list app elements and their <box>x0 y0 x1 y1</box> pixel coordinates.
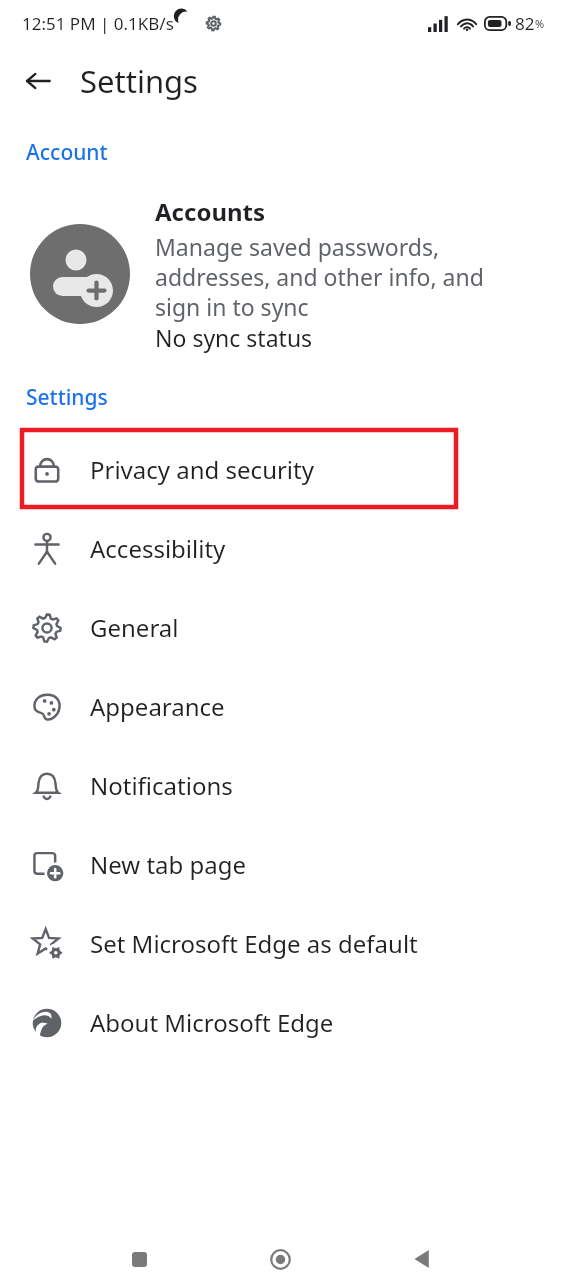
staticText: General <box>90 611 179 644</box>
button[interactable]: General <box>0 588 561 667</box>
staticText: Manage saved passwords, addresses, and o… <box>155 231 484 322</box>
button[interactable]: Recent apps <box>116 1236 162 1282</box>
staticText: % <box>535 16 545 31</box>
button[interactable]: Home <box>257 1236 303 1282</box>
button[interactable]: Appearance <box>0 667 561 746</box>
button[interactable]: Accounts <box>0 195 561 353</box>
staticText: Settings <box>80 60 198 102</box>
staticText: New tab page <box>90 848 247 881</box>
staticText: Accessibility <box>90 532 226 565</box>
staticText: About Microsoft Edge <box>90 1006 334 1039</box>
staticText: Settings <box>26 383 108 412</box>
staticText: 12:51 PM | 0.1KB/s <box>22 12 174 35</box>
button[interactable]: Privacy and security <box>0 430 561 509</box>
staticText: Account <box>26 138 108 167</box>
staticText: Set Microsoft Edge as default <box>90 927 418 960</box>
button[interactable]: About Microsoft Edge <box>0 983 561 1062</box>
staticText: No sync status <box>155 322 313 353</box>
staticText: Notifications <box>90 769 233 802</box>
staticText: 82 <box>515 12 535 35</box>
button[interactable]: Set Microsoft Edge as default <box>0 904 561 983</box>
button[interactable]: Accessibility <box>0 509 561 588</box>
button[interactable]: Notifications <box>0 746 561 825</box>
button[interactable]: Back <box>399 1236 445 1282</box>
button[interactable]: New tab page <box>0 825 561 904</box>
staticText: Appearance <box>90 690 225 723</box>
staticText: Privacy and security <box>90 453 314 486</box>
button[interactable]: Back <box>14 57 62 105</box>
staticText: Accounts <box>155 195 266 228</box>
